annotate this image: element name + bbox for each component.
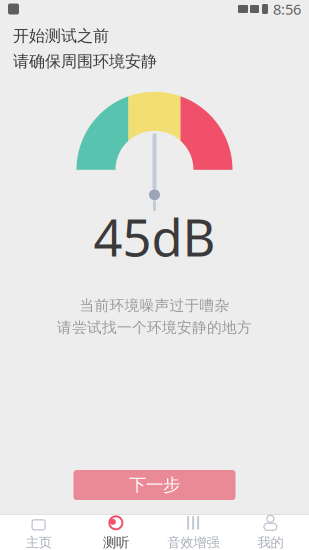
staticText: 请确保周围环境安静 (13, 52, 157, 71)
button[interactable]: 测听 (77, 514, 154, 550)
staticText: 开始测试之前 (13, 26, 109, 46)
button[interactable]: 下一步 (73, 470, 235, 500)
staticText: 音效增强 (167, 534, 219, 550)
staticText: 请尝试找一个环境安静的地方 (57, 319, 252, 337)
button[interactable]: 我的 (232, 514, 309, 550)
staticText: 下一步 (129, 474, 180, 496)
button[interactable]: 主页 (0, 514, 77, 550)
button[interactable]: 音效增强 (154, 514, 232, 550)
staticText: 45dB (93, 203, 215, 271)
staticText: 测听 (103, 534, 129, 550)
staticText: 8:56 (273, 0, 301, 19)
staticText: 我的 (257, 534, 283, 550)
staticText: 主页 (26, 534, 52, 550)
staticText: 当前环境噪声过于嘈杂 (79, 297, 229, 315)
